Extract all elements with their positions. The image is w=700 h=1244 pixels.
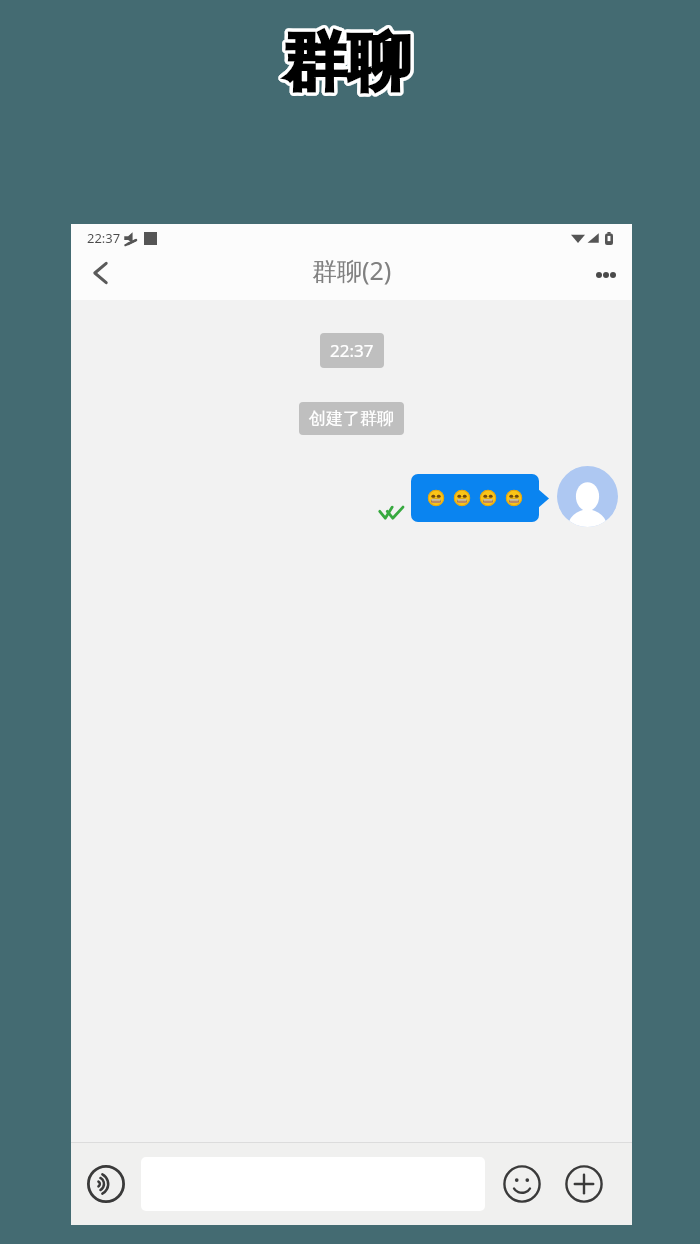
button[interactable]: Sender avatar	[557, 466, 618, 527]
button[interactable]: Back	[71, 252, 123, 300]
staticText: 群聊	[283, 22, 411, 103]
staticText: 创建了群聊	[309, 408, 394, 429]
button[interactable]: Emoji	[499, 1161, 545, 1207]
staticText: 22:37	[330, 339, 374, 362]
staticText: 22:37	[87, 229, 121, 247]
button[interactable]: Voice message	[83, 1161, 129, 1207]
button[interactable]: More	[561, 1161, 607, 1207]
staticText: 群聊	[283, 22, 411, 103]
button[interactable]: More options	[580, 252, 632, 300]
button[interactable]: Message: four grimacing emoji	[411, 474, 539, 522]
staticText: 群聊(2)	[312, 253, 392, 287]
